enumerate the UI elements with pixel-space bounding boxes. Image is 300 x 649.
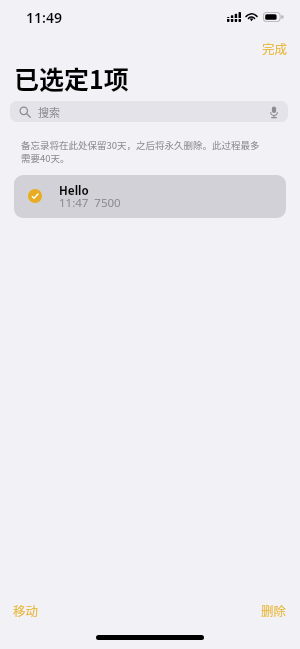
button[interactable]: 删除 (249, 595, 299, 625)
button[interactable]: 搜索 (10, 101, 288, 122)
staticText: 11:47 7500 (59, 195, 121, 211)
staticText: 11:49 (26, 8, 62, 27)
button[interactable]: Hello (14, 175, 286, 218)
button[interactable]: 完成 (250, 33, 300, 63)
staticText: 备忘录将在此处保留30天，之后将永久删除。此过程最多 需要40天。 (21, 138, 260, 165)
staticText: 搜索 (38, 104, 60, 120)
staticText: Hello (59, 183, 89, 199)
staticText: 删除 (261, 601, 287, 619)
other: Voice search (269, 105, 279, 119)
staticText: 完成 (262, 39, 288, 57)
staticText: 已选定1项 (14, 60, 129, 96)
other: Wi-Fi (245, 12, 258, 21)
other: Battery (263, 12, 284, 22)
button[interactable]: 移动 (1, 595, 51, 625)
staticText: 移动 (13, 601, 39, 619)
other: Cellular signal (227, 12, 241, 22)
